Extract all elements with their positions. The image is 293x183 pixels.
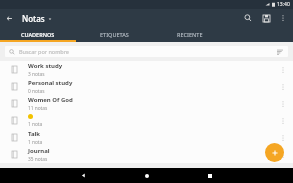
button[interactable]: Search (239, 9, 257, 27)
button[interactable]: Notebook options (275, 62, 291, 78)
staticText: 11 notas (28, 105, 48, 112)
button[interactable]: Notas (22, 13, 52, 24)
staticText: Work study (28, 62, 63, 70)
staticText: 1 nota (28, 121, 43, 128)
button[interactable]: Home (140, 169, 153, 182)
staticText: Personal study (28, 79, 73, 87)
staticText: 35 notas (28, 156, 48, 163)
staticText: CUADERNOS (21, 31, 55, 38)
button[interactable]: More options (275, 10, 291, 26)
staticText: ETIQUETAS (100, 31, 129, 38)
button[interactable]: Work study (0, 61, 293, 78)
button[interactable]: Journal (0, 146, 293, 163)
button[interactable]: Buscar por nombre (5, 46, 288, 57)
staticText: Talk (28, 130, 41, 138)
button[interactable]: Back (77, 169, 90, 182)
staticText: Notas (22, 13, 45, 24)
button[interactable]: Sort (275, 47, 284, 56)
button[interactable]: 1 nota (0, 112, 293, 129)
button[interactable]: Talk (0, 129, 293, 146)
button[interactable]: Save (257, 9, 275, 27)
button[interactable]: Add notebook (265, 143, 284, 162)
staticText: Journal (28, 147, 50, 155)
staticText: Buscar por nombre (19, 48, 69, 55)
button[interactable]: Recents (203, 169, 216, 182)
button[interactable]: Back (0, 9, 18, 27)
button[interactable]: CUADERNOS (0, 27, 76, 42)
button[interactable]: Notebook options (275, 79, 291, 95)
button[interactable]: RECIENTE (152, 27, 228, 42)
staticText: 1 nota (28, 139, 43, 146)
staticText: 0 notas (28, 88, 45, 95)
staticText: 3 notas (28, 71, 45, 78)
button[interactable]: Notebook options (275, 113, 291, 129)
staticText: RECIENTE (177, 31, 203, 38)
button[interactable]: ETIQUETAS (76, 27, 152, 42)
button[interactable]: Notebook options (275, 96, 291, 112)
button[interactable]: Notebook options (275, 147, 291, 163)
button[interactable]: Personal study (0, 78, 293, 95)
staticText: Women Of God (28, 96, 73, 104)
button[interactable]: Notebook options (275, 130, 291, 146)
staticText: 13:40 (277, 1, 290, 8)
button[interactable]: Women Of God (0, 95, 293, 112)
